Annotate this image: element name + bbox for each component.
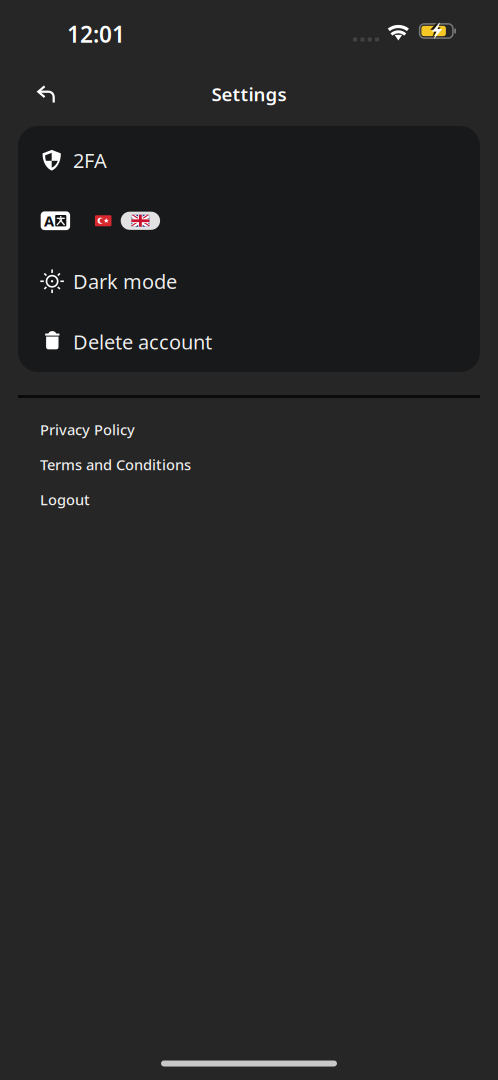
staticText: Dark mode [73, 268, 177, 295]
staticText: Privacy Policy [40, 420, 135, 439]
button[interactable]: 2FA [18, 130, 480, 190]
button[interactable]: Back [27, 75, 65, 113]
button[interactable]: Logout [40, 482, 480, 517]
button[interactable]: Dark mode [18, 251, 480, 311]
staticText: Delete account [73, 328, 212, 355]
staticText: Terms and Conditions [40, 455, 191, 474]
button[interactable]: Privacy Policy [40, 412, 480, 447]
staticText: 2FA [73, 147, 107, 174]
button[interactable]: English [112, 206, 160, 236]
staticText: A [44, 211, 54, 230]
button[interactable]: Delete account [18, 311, 480, 372]
staticText: Settings [211, 82, 286, 106]
button[interactable]: Language [41, 206, 70, 236]
button[interactable]: Terms and Conditions [40, 447, 480, 482]
staticText: Logout [40, 490, 90, 509]
button[interactable]: Türkçe [70, 206, 112, 236]
staticText: 12:01 [67, 19, 125, 49]
